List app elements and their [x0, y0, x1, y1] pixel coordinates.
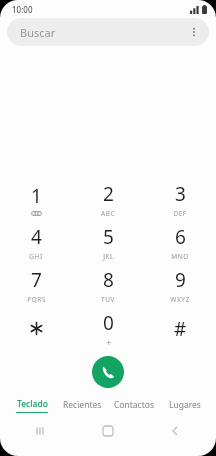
staticText: 1 — [31, 183, 42, 209]
staticText: WXYZ — [170, 295, 190, 304]
button[interactable]: Call — [92, 356, 124, 388]
staticText: MNO — [171, 252, 189, 261]
button[interactable]: Back — [160, 416, 190, 446]
button[interactable]: 5 — [72, 221, 144, 264]
button[interactable] — [0, 307, 72, 350]
staticText: GHI — [29, 252, 43, 261]
staticText: 7 — [31, 267, 42, 293]
staticText: Teclado — [17, 398, 48, 410]
staticText: # — [174, 316, 187, 342]
staticText: JKL — [103, 252, 114, 261]
button[interactable]: 6 — [144, 221, 216, 264]
button[interactable]: Home — [93, 416, 123, 446]
staticText: 8 — [103, 267, 114, 293]
staticText: 2 — [103, 181, 114, 207]
button[interactable]: Recientes — [57, 394, 108, 416]
button[interactable]: 0 — [72, 307, 144, 350]
button[interactable]: More options — [183, 21, 205, 43]
staticText: 3 — [175, 181, 186, 207]
button[interactable]: Recents — [26, 416, 56, 446]
staticText: 4 — [31, 224, 42, 250]
button[interactable]: 9 — [144, 264, 216, 307]
button[interactable]: 2 — [72, 178, 144, 221]
button[interactable]: # — [144, 307, 216, 350]
staticText: PQRS — [27, 295, 46, 304]
staticText: DEF — [173, 209, 187, 218]
button[interactable]: 4 — [0, 221, 72, 264]
staticText: Contactos — [114, 399, 154, 411]
staticText: Buscar — [20, 25, 56, 40]
staticText: Lugares — [169, 399, 201, 411]
staticText: 10:00 — [12, 4, 33, 15]
staticText: 6 — [175, 224, 186, 250]
button[interactable]: 1 — [0, 178, 72, 221]
button[interactable]: 7 — [0, 264, 72, 307]
staticText: 0 — [103, 310, 114, 336]
staticText: 9 — [175, 267, 186, 293]
staticText: Recientes — [63, 399, 102, 411]
button[interactable]: 3 — [144, 178, 216, 221]
staticText: 5 — [103, 224, 114, 250]
staticText: TUV — [101, 295, 115, 304]
staticText: ABC — [101, 209, 115, 218]
button[interactable]: Teclado — [6, 394, 57, 416]
button[interactable]: Buscar — [7, 18, 209, 46]
staticText: + — [106, 337, 112, 348]
button[interactable]: 8 — [72, 264, 144, 307]
button[interactable]: Lugares — [159, 394, 210, 416]
button[interactable]: Contactos — [108, 394, 159, 416]
